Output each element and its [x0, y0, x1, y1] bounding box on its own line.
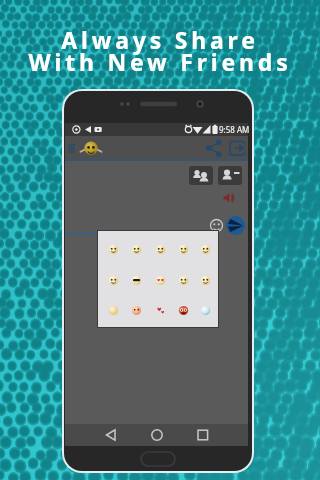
button[interactable]: Exit	[227, 138, 247, 158]
button[interactable]: Emoji	[130, 304, 143, 317]
button[interactable]: Emoji	[177, 274, 190, 287]
button[interactable]: Emoji	[107, 274, 120, 287]
button[interactable]: Emoji	[154, 274, 167, 287]
button[interactable]: Emoji	[210, 219, 223, 232]
staticText: With New Friends	[28, 46, 292, 77]
button[interactable]: Emoji	[107, 304, 120, 317]
button[interactable]: Add group	[189, 166, 213, 185]
button[interactable]: Emoji	[177, 243, 190, 256]
button[interactable]: Emoji	[107, 243, 120, 256]
button[interactable]: Send	[226, 216, 245, 235]
button[interactable]: Menu	[65, 138, 79, 158]
button[interactable]: Emoji	[154, 243, 167, 256]
button[interactable]: Emoji	[130, 243, 143, 256]
button[interactable]: Emoji	[154, 304, 167, 317]
button[interactable]: Emoji	[199, 274, 212, 287]
button[interactable]: Emoji	[130, 274, 143, 287]
button[interactable]: Remove contact	[218, 166, 242, 185]
staticText: Always Share	[61, 24, 259, 55]
staticText: 9:58 AM	[219, 124, 250, 135]
button[interactable]: Share	[204, 138, 224, 158]
button[interactable]: Emoji	[199, 243, 212, 256]
button[interactable]: Emoji	[199, 304, 212, 317]
button[interactable]: Emoji	[177, 304, 190, 317]
